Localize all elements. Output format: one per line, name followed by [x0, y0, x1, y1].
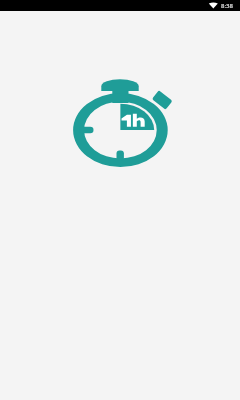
- other: Wi-Fi connected: [0, 0, 240, 11]
- staticText: 8:38: [221, 2, 233, 10]
- other: Stopwatch app logo: [0, 0, 240, 400]
